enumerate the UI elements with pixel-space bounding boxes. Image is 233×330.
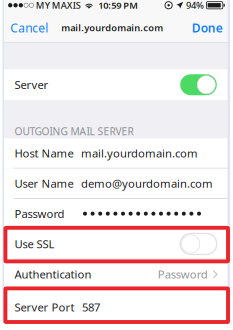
button[interactable]: Cancel bbox=[4, 13, 55, 43]
button[interactable]: User Name bbox=[4, 169, 228, 198]
staticText: Password bbox=[14, 206, 64, 221]
button[interactable]: Done bbox=[187, 13, 228, 43]
button[interactable]: Password bbox=[4, 199, 228, 228]
staticText: Done bbox=[192, 20, 223, 36]
staticText: 587 bbox=[82, 300, 100, 315]
staticText: 10:59 PM bbox=[98, 0, 138, 11]
staticText: Password bbox=[158, 267, 208, 282]
button[interactable]: Server Port bbox=[4, 290, 228, 325]
staticText: Cancel bbox=[10, 20, 48, 36]
button[interactable]: Host Name bbox=[4, 138, 228, 168]
staticText: Server Port bbox=[14, 300, 74, 315]
staticText: mail.yourdomain.com bbox=[61, 22, 163, 34]
staticText: User Name bbox=[14, 176, 73, 191]
staticText: Use SSL bbox=[14, 236, 54, 252]
staticText: OUTGOING MAIL SERVER bbox=[14, 124, 133, 138]
staticText: demo@yourdomain.com bbox=[81, 176, 213, 191]
staticText: MY MAXIS bbox=[36, 0, 81, 11]
button[interactable]: Authentication bbox=[4, 259, 228, 289]
staticText: 94% bbox=[186, 0, 204, 11]
staticText: Authentication bbox=[14, 267, 91, 282]
button[interactable]: Server bbox=[4, 69, 228, 100]
button[interactable]: Use SSL bbox=[4, 229, 228, 259]
staticText: Host Name bbox=[14, 145, 73, 161]
staticText: mail.yourdomain.com bbox=[81, 145, 198, 161]
staticText: Server bbox=[14, 77, 48, 92]
